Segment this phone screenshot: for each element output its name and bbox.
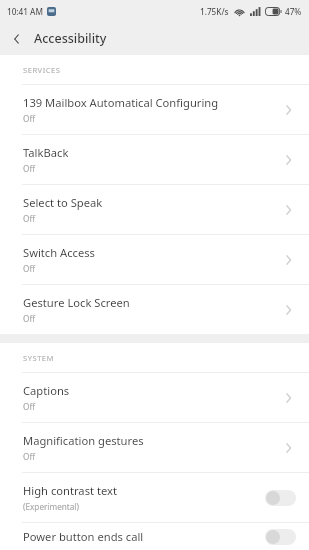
staticText: (Experimental)	[23, 501, 79, 512]
staticText: Off	[23, 163, 36, 174]
staticText: Gesture Lock Screen	[23, 295, 130, 310]
button[interactable]: Magnification gestures	[0, 423, 309, 472]
staticText: Accessibility	[34, 30, 107, 47]
button[interactable]: Switch Access	[0, 235, 309, 284]
staticText: Off	[23, 401, 36, 412]
button[interactable]: High contrast text	[0, 473, 309, 522]
staticText: Off	[23, 451, 36, 462]
button[interactable]: Captions	[0, 373, 309, 422]
staticText: Magnification gestures	[23, 433, 144, 448]
staticText: 10:41 AM	[7, 6, 43, 17]
staticText: TalkBack	[23, 145, 69, 160]
staticText: Captions	[23, 383, 70, 398]
staticText: SYSTEM	[23, 353, 54, 363]
button[interactable]: Power button ends call	[0, 523, 309, 550]
button[interactable]: Gesture Lock Screen	[0, 285, 309, 334]
staticText: High contrast text	[23, 483, 118, 498]
staticText: Power button ends call	[23, 529, 144, 544]
staticText: Off	[23, 213, 36, 224]
staticText: 1.75K/s	[200, 6, 229, 17]
button[interactable]: Select to Speak	[0, 185, 309, 234]
staticText: Off	[23, 113, 36, 124]
staticText: SERVICES	[23, 65, 61, 75]
staticText: 47%	[285, 6, 302, 17]
staticText: Switch Access	[23, 245, 95, 260]
staticText: Off	[23, 263, 36, 274]
staticText: Select to Speak	[23, 195, 103, 210]
button[interactable]: TalkBack	[0, 135, 309, 184]
button[interactable]: Toggle	[265, 490, 296, 506]
staticText: Off	[23, 313, 36, 324]
button[interactable]: 139 Mailbox Automatical Configuring	[0, 85, 309, 134]
staticText: 139 Mailbox Automatical Configuring	[23, 95, 219, 110]
button[interactable]: Toggle	[265, 529, 296, 545]
button[interactable]: Back	[0, 22, 34, 55]
